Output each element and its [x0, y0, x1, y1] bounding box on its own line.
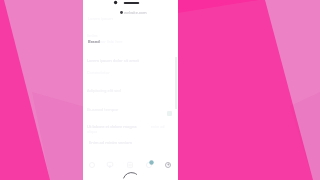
- button[interactable]: website.com: [120, 9, 147, 15]
- button[interactable]: Notifications: [142, 158, 156, 172]
- button[interactable]: Lorem ipsum dolor sit amet: [87, 58, 139, 63]
- staticText: Brand: [88, 39, 100, 44]
- button[interactable]: Ut labore et dolore magna: [87, 124, 137, 129]
- staticText: website.com: [124, 10, 147, 15]
- button[interactable]: Eiusmod tempor: [87, 107, 119, 112]
- button[interactable]: Enim ad minim veniam: [89, 140, 133, 145]
- button[interactable]: Adipiscing elit sed: [87, 88, 121, 93]
- button[interactable]: Profile: [161, 158, 175, 172]
